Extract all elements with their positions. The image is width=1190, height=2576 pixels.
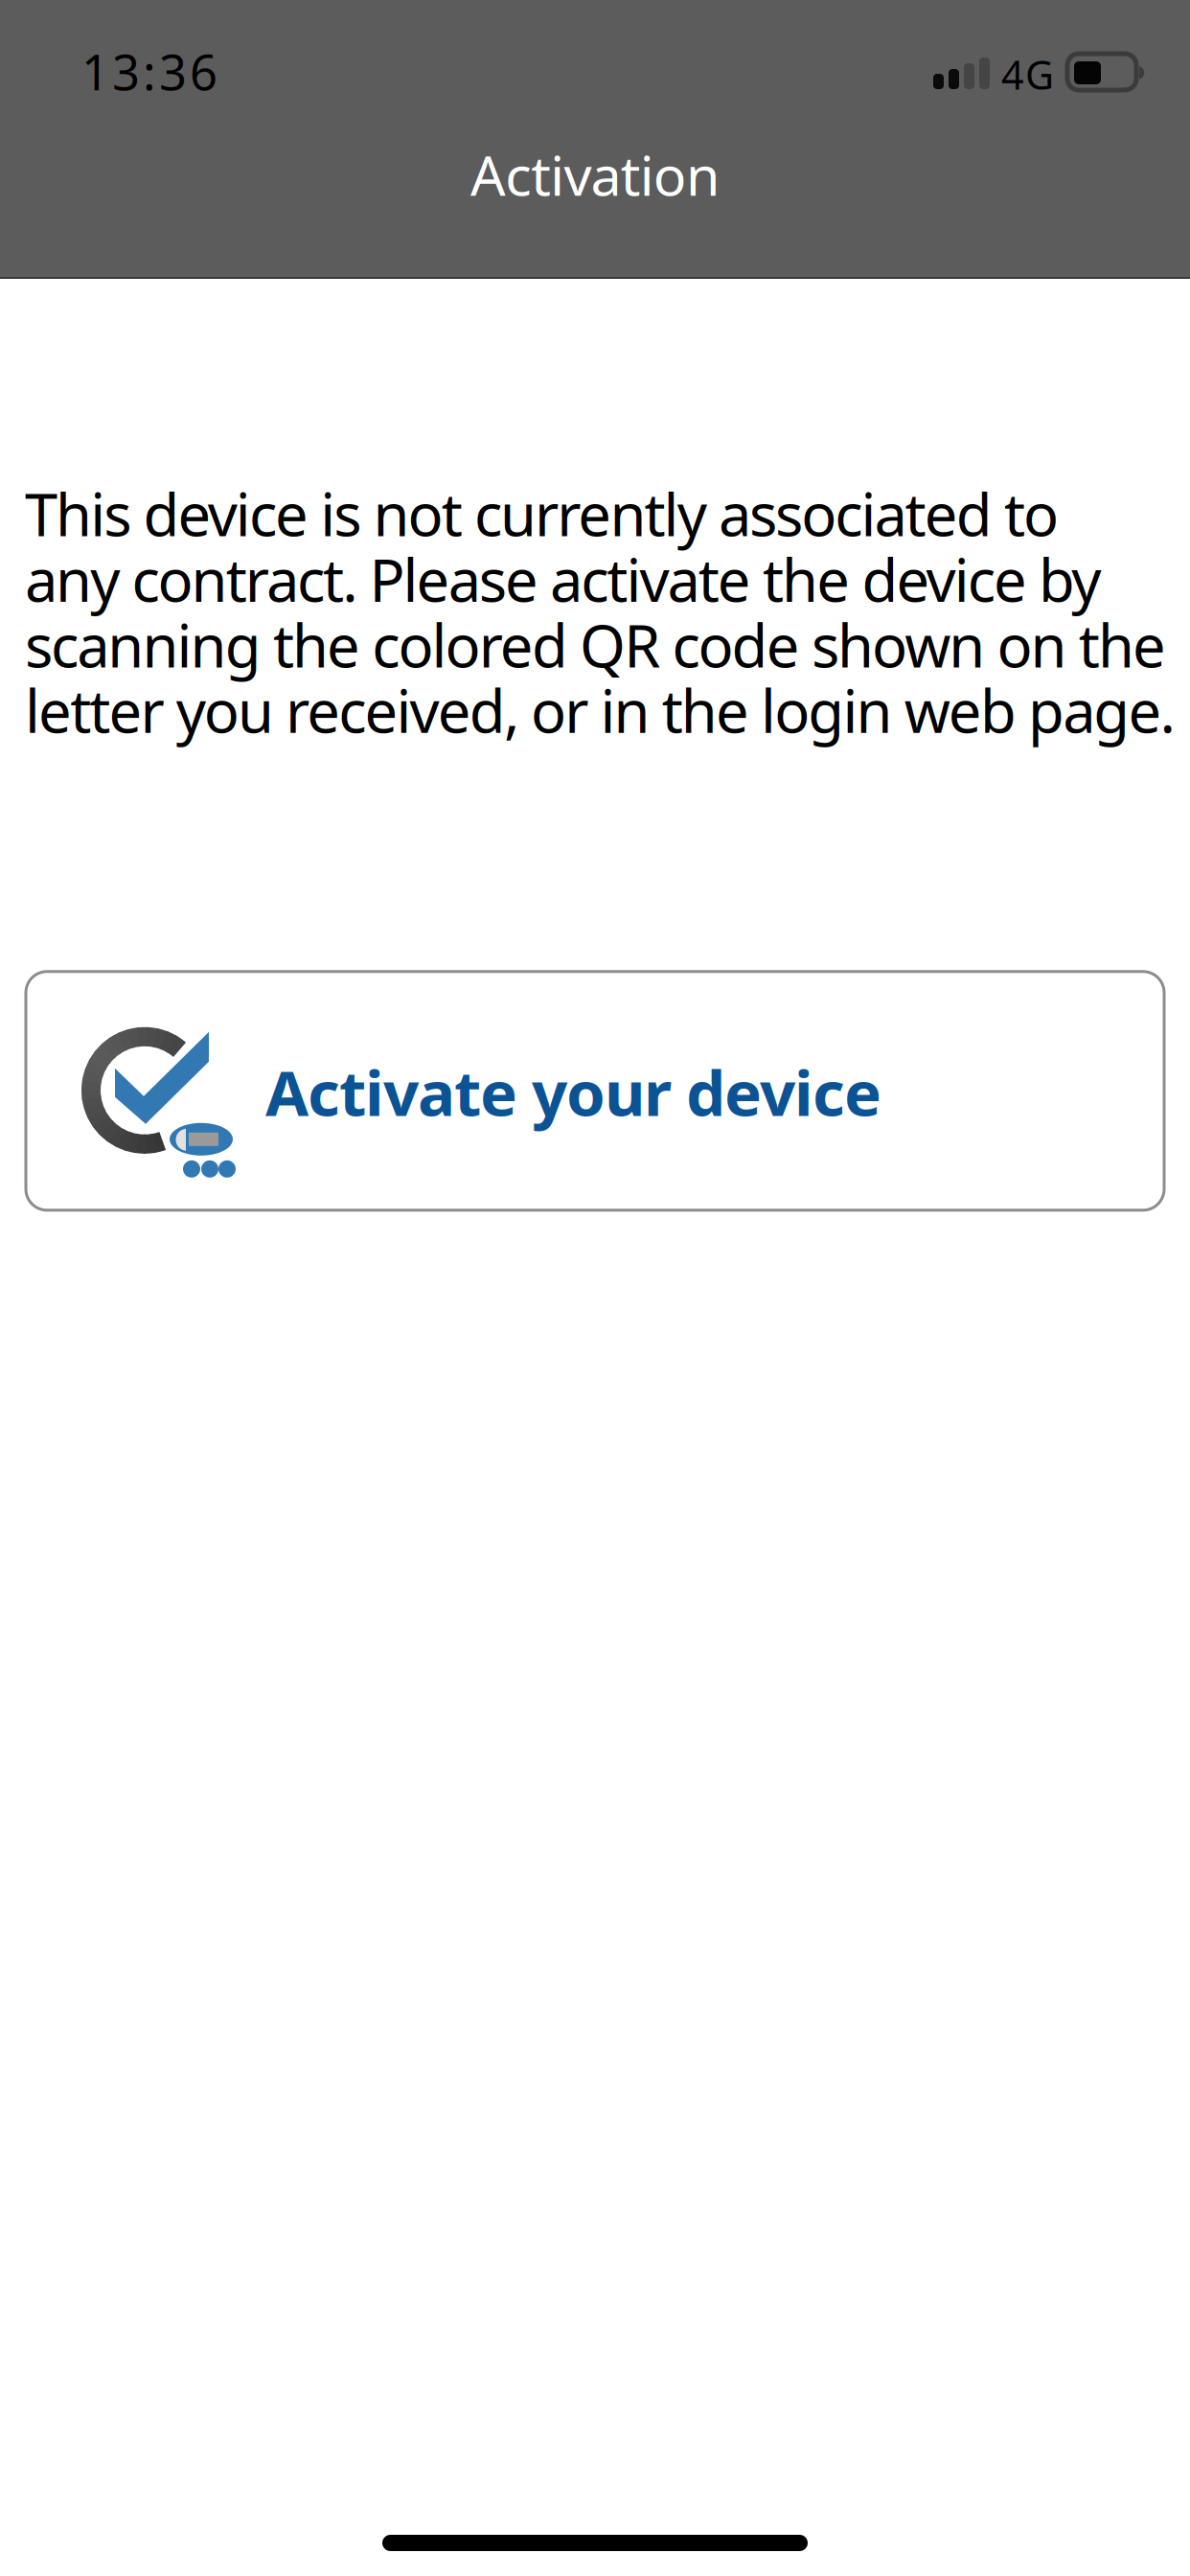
staticText: 4G (1001, 48, 1054, 101)
staticText: This device is not currently associated … (25, 474, 1175, 749)
staticText: 13:36 (81, 39, 217, 104)
staticText: Activation (471, 138, 720, 211)
button[interactable]: Activate your device (26, 972, 1164, 1210)
staticText: Activate your device (265, 1050, 881, 1133)
